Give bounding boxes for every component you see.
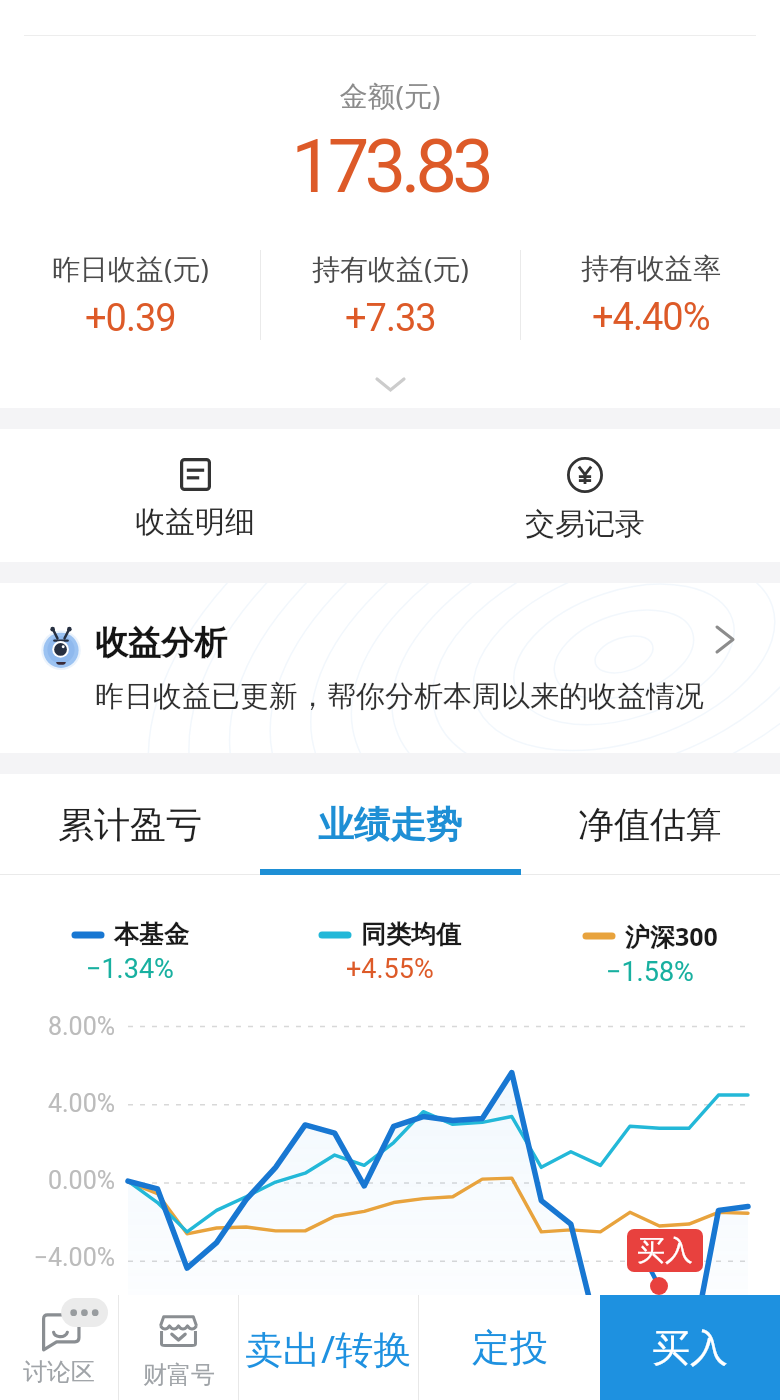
staticText: 财富号 xyxy=(143,1360,215,1390)
staticText: 173.83 xyxy=(0,123,780,210)
staticText: 4.00% xyxy=(0,1089,115,1118)
staticText: 卖出/转换 xyxy=(245,1322,412,1374)
staticText: 交易记录 xyxy=(525,505,645,543)
staticText: −4.00% xyxy=(0,1243,115,1272)
button[interactable]: 财富号 xyxy=(119,1295,238,1400)
staticText: +4.40% xyxy=(592,295,710,340)
staticText: 8.00% xyxy=(0,1012,115,1041)
staticText: 收益分析 xyxy=(95,622,227,664)
staticText: −1.58% xyxy=(606,956,694,988)
staticText: 昨日收益已更新，帮你分析本周以来的收益情况 xyxy=(95,678,704,715)
button[interactable]: 买入 xyxy=(600,1295,780,1400)
other: 讨论区 xyxy=(10,1298,108,1347)
staticText: 业绩走势 xyxy=(318,802,462,847)
button[interactable]: 净值估算 xyxy=(520,774,780,875)
staticText: 收益明细 xyxy=(135,503,255,541)
button[interactable]: 收益明细 xyxy=(0,429,390,562)
button[interactable]: 累计盈亏 xyxy=(0,774,260,875)
staticText: +0.39 xyxy=(85,296,176,341)
button[interactable]: 定投 xyxy=(419,1295,600,1400)
staticText: 本基金 xyxy=(114,919,189,950)
staticText: 累计盈亏 xyxy=(58,802,202,847)
staticText: 净值估算 xyxy=(578,802,722,847)
button[interactable]: 卖出/转换 xyxy=(239,1295,418,1400)
staticText: 同类均值 xyxy=(361,919,461,950)
button[interactable]: 讨论区 xyxy=(0,1295,118,1400)
button[interactable]: 业绩走势 xyxy=(260,774,520,875)
staticText: 沪深300 xyxy=(625,919,718,953)
staticText: +4.55% xyxy=(346,953,434,985)
staticText: 持有收益率 xyxy=(581,251,721,286)
button[interactable]: 交易记录 xyxy=(390,429,780,562)
button[interactable]: 收益分析 xyxy=(0,583,780,753)
staticText: 定投 xyxy=(472,1324,548,1372)
staticText: 买入 xyxy=(652,1324,728,1372)
staticText: 金额(元) xyxy=(0,76,780,114)
staticText: 持有收益(元) xyxy=(312,249,469,287)
staticText: −1.34% xyxy=(86,953,174,985)
staticText: 昨日收益(元) xyxy=(52,249,209,287)
staticText: 讨论区 xyxy=(23,1357,95,1387)
staticText: 0.00% xyxy=(0,1166,115,1195)
other: 财富号 xyxy=(159,1315,198,1347)
staticText: +7.33 xyxy=(345,296,436,341)
staticText: 买入 xyxy=(637,1233,693,1268)
